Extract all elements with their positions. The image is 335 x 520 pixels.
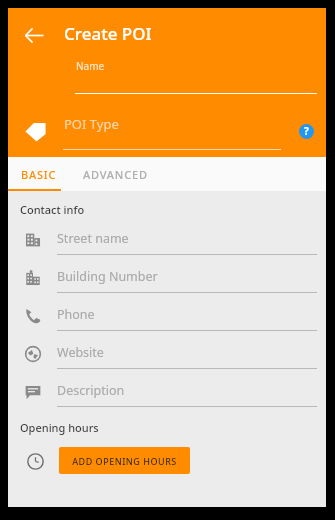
button[interactable]: Street name (8, 225, 326, 255)
staticText: Building Number (57, 268, 158, 285)
button[interactable]: Phone (8, 301, 326, 331)
staticText: ADD OPENING HOURS (72, 455, 177, 467)
staticText: ? (304, 124, 309, 138)
button[interactable]: Website (8, 339, 326, 369)
button[interactable]: Building Number (8, 263, 326, 293)
button[interactable]: Description (8, 377, 326, 407)
staticText: Website (57, 344, 104, 361)
staticText: Opening hours (20, 420, 99, 435)
staticText: ADVANCED (83, 167, 148, 182)
button[interactable]: Back (14, 15, 54, 55)
button[interactable]: BASIC (8, 157, 70, 191)
button[interactable]: ADD OPENING HOURS (59, 447, 190, 474)
button[interactable]: Help (293, 118, 319, 144)
button[interactable]: Name (63, 56, 317, 94)
staticText: Contact info (20, 202, 85, 217)
button[interactable]: ADVANCED (70, 157, 160, 191)
staticText: POI Type (64, 115, 119, 133)
staticText: Name (76, 59, 105, 73)
button[interactable]: POI Type (63, 112, 281, 150)
staticText: Create POI (64, 22, 152, 45)
staticText: Phone (57, 306, 95, 323)
other: POI type tag (18, 114, 52, 148)
staticText: Street name (57, 230, 129, 247)
staticText: BASIC (21, 167, 57, 182)
staticText: Description (57, 382, 125, 399)
